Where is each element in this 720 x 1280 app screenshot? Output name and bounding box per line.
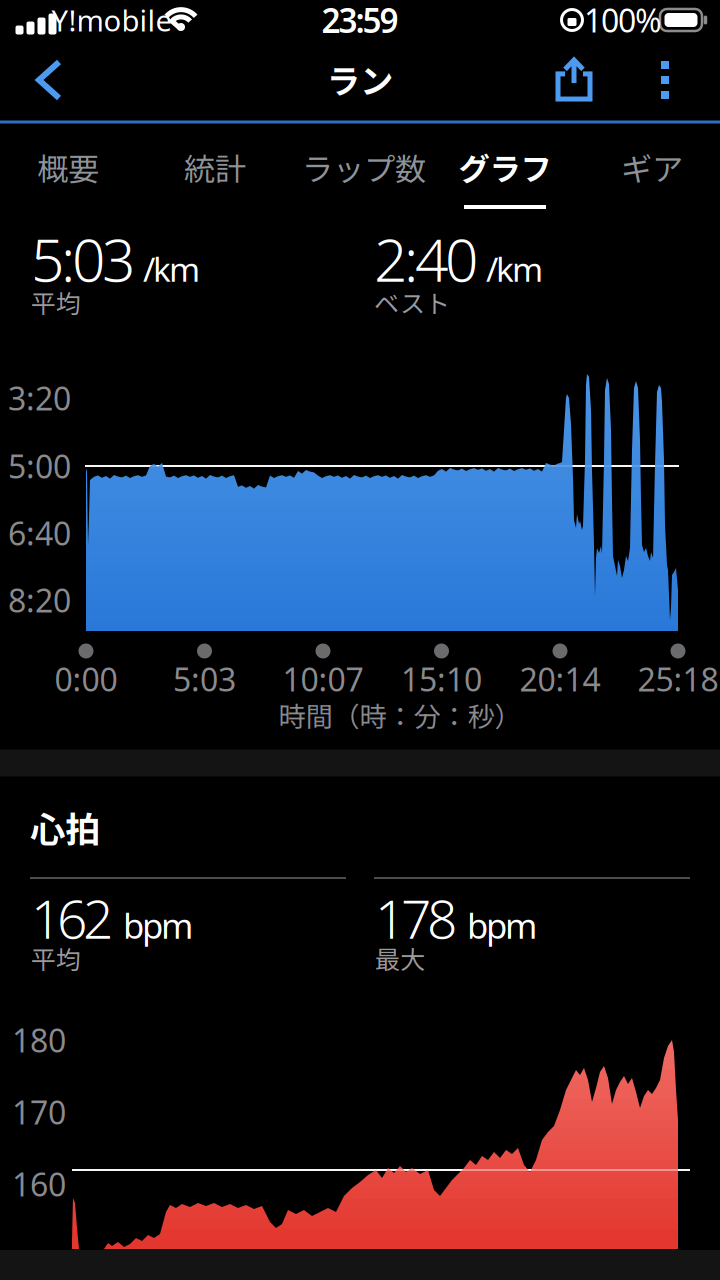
staticText: 160 — [12, 1163, 66, 1205]
button[interactable]: ギア — [577, 125, 720, 209]
button[interactable]: More options — [649, 49, 681, 111]
staticText: 100% — [584, 0, 662, 41]
button[interactable]: Share — [546, 49, 602, 111]
staticText: 170 — [12, 1091, 66, 1133]
staticText: 6:40 — [8, 512, 71, 554]
staticText: 3:20 — [8, 377, 71, 419]
staticText: 0:00 — [54, 658, 117, 700]
staticText: /km — [486, 247, 543, 291]
staticText: 15:10 — [401, 658, 482, 700]
staticText: 統計 — [184, 144, 246, 190]
staticText: 5:00 — [8, 445, 71, 487]
button[interactable]: ラップ数 — [289, 125, 439, 209]
staticText: 心拍 — [30, 801, 100, 853]
button[interactable]: 概要 — [0, 125, 143, 209]
button[interactable]: Back — [25, 48, 73, 112]
staticText: bpm — [123, 902, 193, 948]
staticText: 162 — [31, 883, 113, 953]
staticText: 最大 — [375, 940, 425, 976]
staticText: ベスト — [374, 284, 450, 320]
button[interactable]: グラフ — [430, 125, 580, 209]
staticText: /km — [143, 247, 200, 291]
staticText: 25:18 — [637, 658, 718, 700]
staticText: Y!mobile — [51, 0, 172, 39]
staticText: 2:40 — [374, 220, 478, 298]
staticText: グラフ — [458, 144, 551, 190]
staticText: 20:14 — [519, 658, 600, 700]
staticText: 23:59 — [321, 0, 398, 42]
staticText: ラン — [327, 55, 393, 103]
staticText: 8:20 — [8, 579, 71, 621]
staticText: bpm — [467, 902, 537, 948]
staticText: 5:03 — [31, 220, 135, 298]
staticText: 10:07 — [282, 658, 363, 700]
staticText: ギア — [621, 144, 683, 190]
staticText: ラップ数 — [302, 144, 426, 190]
staticText: 178 — [375, 883, 457, 953]
staticText: 180 — [12, 1019, 66, 1061]
button[interactable]: 統計 — [140, 125, 290, 209]
staticText: 時間（時：分：秒） — [278, 695, 521, 735]
staticText: 平均 — [31, 284, 81, 320]
staticText: 5:03 — [173, 658, 236, 700]
staticText: 平均 — [31, 940, 81, 976]
staticText: 概要 — [37, 144, 99, 190]
